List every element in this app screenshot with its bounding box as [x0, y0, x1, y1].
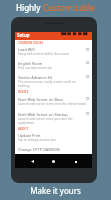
staticText: Load WiFi [18, 47, 36, 52]
button[interactable]: Load WiFi [15, 46, 92, 57]
staticText: COMMON ISSUES [18, 41, 44, 45]
staticText: Setup [17, 32, 30, 38]
staticText: Launch web server once you start the app… [18, 117, 86, 125]
staticText: Change HTTP DAEMON [18, 147, 60, 152]
staticText: English Room [18, 61, 43, 66]
staticText: Make it yours [0, 185, 111, 196]
button[interactable]: Update Print [15, 132, 92, 144]
button[interactable]: Similar Advance Kit [15, 71, 92, 88]
button[interactable]: English Room [15, 57, 92, 71]
staticText: Start Web Server on Boot [18, 97, 63, 102]
staticText: Launch web server every time the device … [18, 102, 86, 106]
staticText: Update Print [18, 133, 41, 138]
button[interactable]: Back [28, 157, 37, 166]
staticText: Tap to change version you [18, 138, 57, 142]
staticText: The screen some, easily create a wiki on… [18, 80, 86, 88]
staticText: Similar Advance Kit [18, 75, 53, 80]
button[interactable]: Setup [17, 32, 30, 38]
staticText: DEVICE [18, 90, 29, 94]
staticText: Find out why we are do [18, 66, 52, 70]
button[interactable]: Start Web Server on Boot [15, 96, 92, 111]
button[interactable]: Recents [71, 157, 80, 166]
button[interactable]: Change HTTP DAEMON [15, 144, 92, 154]
button[interactable]: Start Web Server on Startup [15, 111, 92, 125]
staticText: Setup wifi control within the sound [18, 52, 69, 56]
staticText: Start Web Server on Startup [18, 112, 68, 117]
staticText: Highly [16, 2, 43, 13]
button[interactable]: Home [49, 157, 58, 166]
staticText: Customizable [43, 2, 95, 13]
staticText: ABOUT [18, 127, 29, 131]
button[interactable]: Overflow actions [61, 32, 89, 40]
